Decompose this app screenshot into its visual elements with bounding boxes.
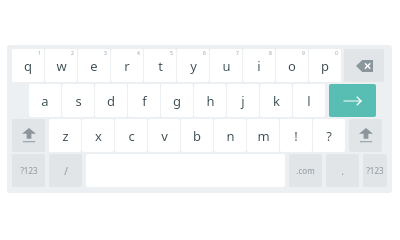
staticText: x [95,127,102,145]
staticText: z [62,127,69,145]
button[interactable]: b [181,119,213,152]
staticText: 2 [71,50,74,57]
staticText: u [222,57,231,75]
staticText: 7 [236,50,239,57]
staticText: t [158,57,163,75]
staticText: q [24,57,32,75]
staticText: v [161,127,168,145]
staticText: e [90,57,98,75]
button[interactable]: q [12,49,44,82]
staticText: g [173,92,181,110]
button[interactable]: f [128,84,160,117]
staticText: w [56,57,67,75]
staticText: i [257,57,261,75]
staticText: c [128,127,135,145]
button[interactable]: t [144,49,176,82]
button[interactable]: j [227,84,259,117]
button[interactable]: Backspace [344,49,384,82]
staticText: h [206,92,215,110]
button[interactable]: Shift [12,119,45,152]
button[interactable]: r [111,49,143,82]
button[interactable]: y [177,49,209,82]
button[interactable]: s [62,84,94,117]
staticText: 1 [38,50,41,57]
button[interactable]: o [276,49,308,82]
button[interactable]: p [309,49,341,82]
button[interactable]: i [243,49,275,82]
staticText: f [142,92,147,110]
staticText: ?123 [366,165,384,176]
staticText: b [193,127,201,145]
button[interactable]: ! [280,119,312,152]
button[interactable]: Shift [349,119,382,152]
button[interactable]: g [161,84,193,117]
staticText: 3 [104,50,107,57]
staticText: p [321,57,329,75]
button[interactable]: m [247,119,279,152]
staticText: ? [326,127,332,145]
staticText: 6 [203,50,206,57]
staticText: / [64,164,68,178]
staticText: 5 [170,50,173,57]
staticText: 0 [335,50,338,57]
staticText: o [288,57,296,75]
staticText: m [257,127,270,145]
staticText: .com [296,165,315,176]
button[interactable]: x [82,119,114,152]
staticText: . [341,164,344,178]
button[interactable]: k [260,84,292,117]
button[interactable]: a [29,84,61,117]
staticText: k [273,92,280,110]
button[interactable]: ?123 [363,154,387,187]
button[interactable]: ? [313,119,345,152]
staticText: 8 [269,50,272,57]
button[interactable]: Enter [329,84,376,117]
staticText: l [307,92,311,110]
staticText: 4 [137,50,140,57]
staticText: ?123 [20,165,38,176]
staticText: n [226,127,235,145]
button[interactable]: v [148,119,180,152]
button[interactable]: ?123 [12,154,45,187]
button[interactable]: n [214,119,246,152]
staticText: a [41,92,49,110]
button[interactable]: u [210,49,242,82]
button[interactable]: z [49,119,81,152]
staticText: r [124,57,130,75]
button[interactable]: .com [289,154,322,187]
staticText: d [107,92,115,110]
staticText: s [75,92,82,110]
button[interactable]: e [78,49,110,82]
button[interactable]: d [95,84,127,117]
button[interactable]: h [194,84,226,117]
button[interactable]: l [293,84,325,117]
button[interactable]: c [115,119,147,152]
button[interactable]: w [45,49,77,82]
staticText: j [241,92,245,110]
staticText: 9 [302,50,305,57]
button[interactable]: / [49,154,82,187]
staticText: y [190,57,197,75]
staticText: ! [294,127,298,145]
